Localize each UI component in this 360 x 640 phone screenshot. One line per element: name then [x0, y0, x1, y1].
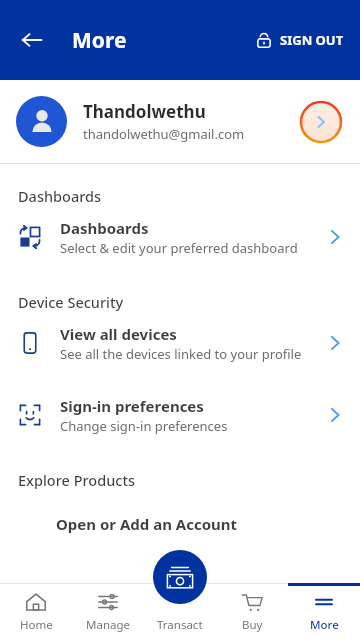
button[interactable]: Open or Add an Account: [0, 504, 360, 544]
button[interactable]: Sign-in preferences: [0, 384, 360, 446]
staticText: Device Security: [18, 292, 124, 312]
staticText: More: [72, 26, 127, 55]
staticText: Sign-in preferences: [60, 396, 204, 416]
staticText: Dashboards: [18, 186, 102, 206]
staticText: thandolwethu@gmail.com: [83, 125, 245, 143]
staticText: View all devices: [60, 324, 177, 344]
staticText: Home: [20, 617, 53, 633]
staticText: Change sign-in preferences: [60, 417, 228, 435]
button[interactable]: Transact: [144, 583, 216, 640]
button[interactable]: Rewards: [298, 99, 344, 145]
staticText: Select & edit your preferred dashboard: [60, 239, 298, 257]
button[interactable]: Home: [0, 583, 72, 640]
staticText: Transact: [157, 617, 203, 633]
button[interactable]: More: [288, 583, 360, 640]
staticText: Manage: [86, 617, 130, 633]
staticText: Open or Add an Account: [56, 514, 238, 534]
button[interactable]: Buy: [216, 583, 288, 640]
staticText: Thandolwethu: [83, 100, 206, 123]
button[interactable]: Back: [8, 16, 56, 64]
button[interactable]: Dashboards: [0, 206, 360, 268]
button[interactable]: Transact: [153, 550, 207, 604]
staticText: Buy: [242, 617, 263, 633]
staticText: See all the devices linked to your profi…: [60, 345, 302, 363]
staticText: Dashboards: [60, 218, 149, 238]
staticText: SIGN OUT: [280, 31, 344, 49]
button[interactable]: SIGN OUT: [253, 25, 346, 55]
button[interactable]: Thandolwethu: [0, 80, 360, 163]
staticText: More: [310, 617, 339, 633]
staticText: Explore Products: [18, 470, 135, 490]
button[interactable]: Manage: [72, 583, 144, 640]
button[interactable]: View all devices: [0, 312, 360, 374]
